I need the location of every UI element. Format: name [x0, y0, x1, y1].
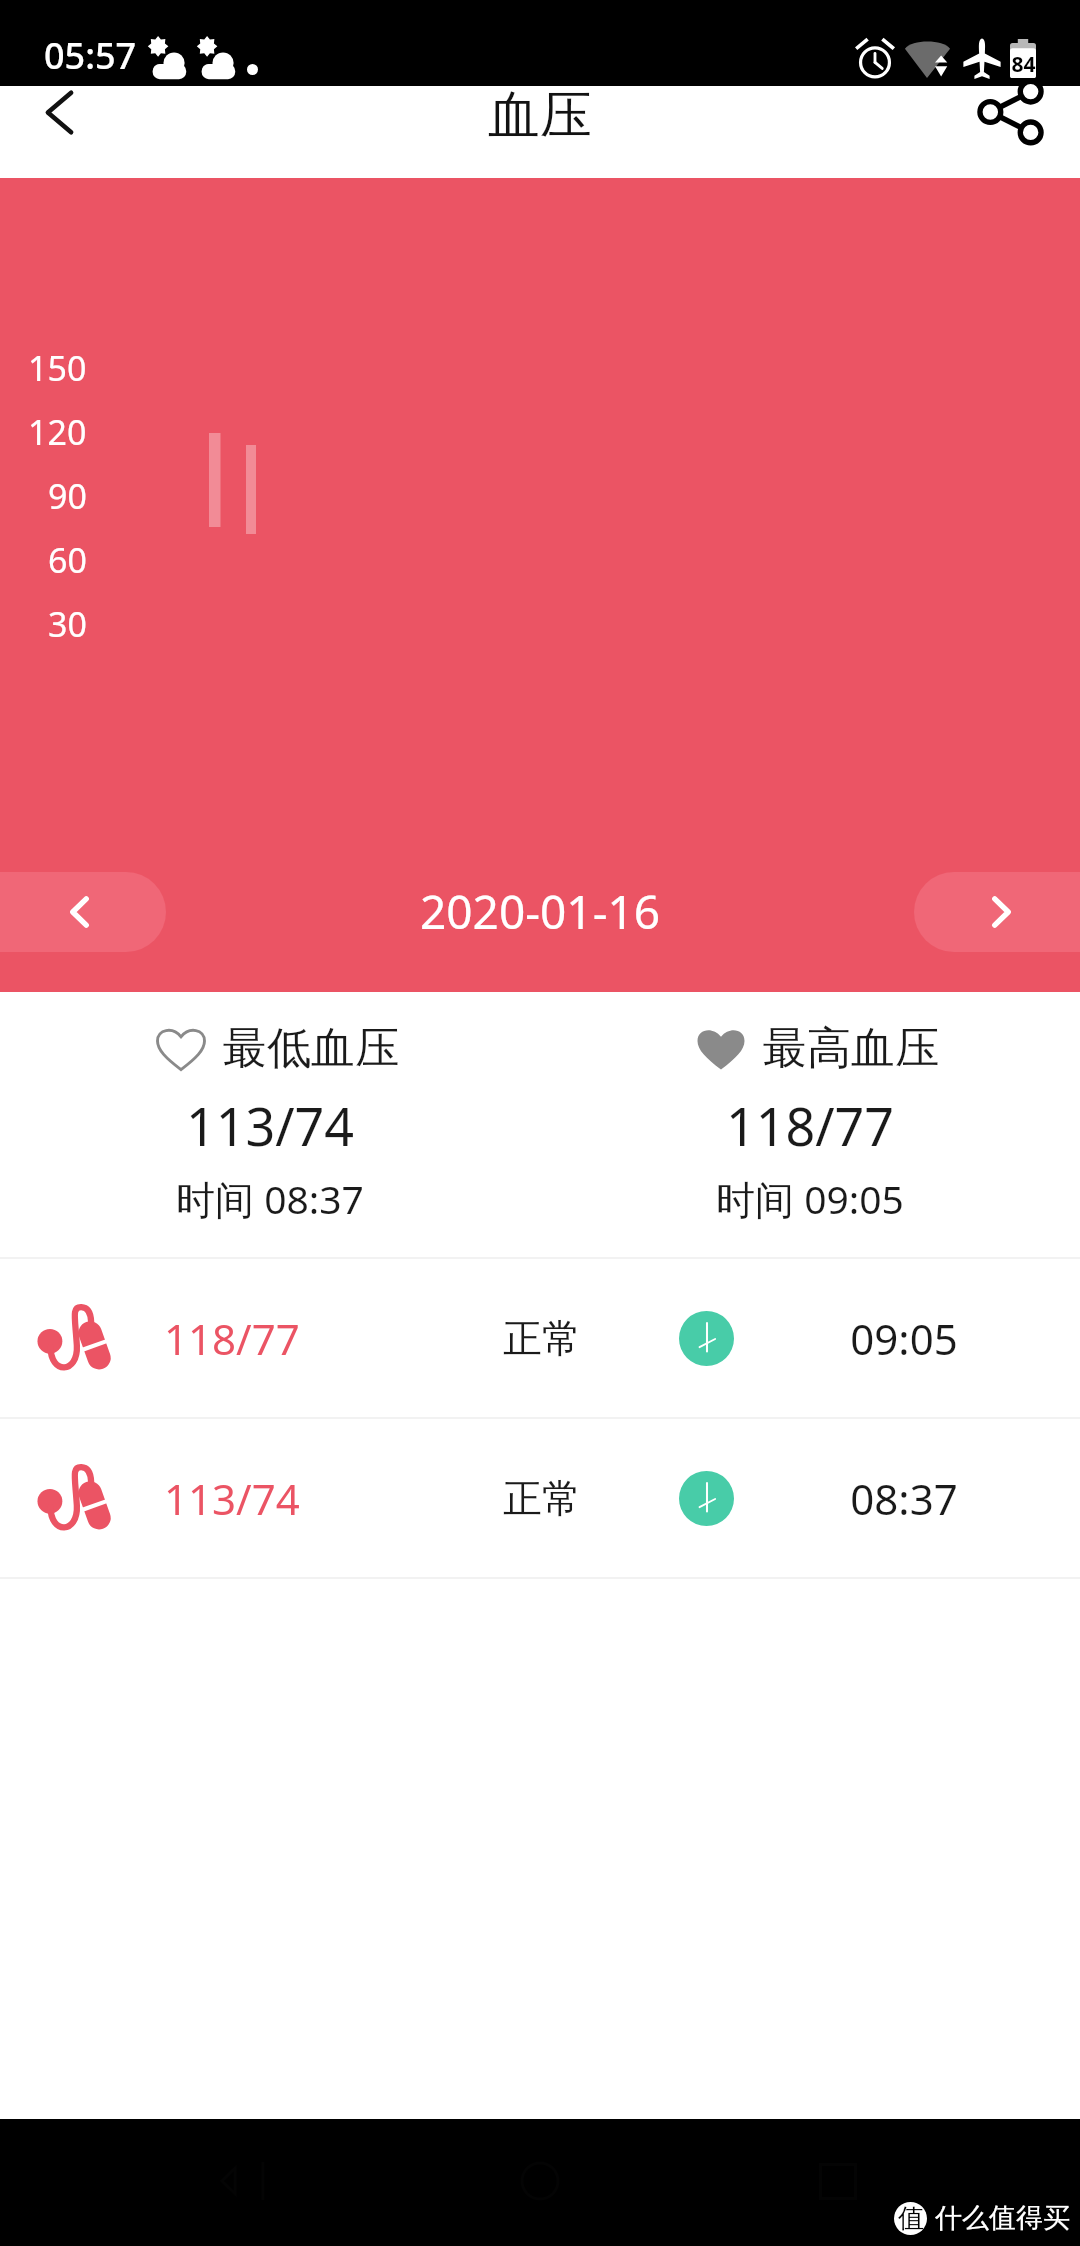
staticText: 113/74 — [186, 1090, 355, 1161]
staticText: 时间 09:05 — [716, 1172, 904, 1225]
staticText: 值 — [898, 2202, 924, 2235]
staticText: 正常 — [503, 1474, 581, 1523]
staticText: 最高血压 — [763, 1021, 939, 1076]
staticText: 血压 — [488, 83, 592, 149]
staticText: 84 — [1011, 50, 1036, 79]
button[interactable]: Back — [0, 86, 120, 178]
staticText: 09:05 — [850, 1310, 958, 1367]
staticText: 90 — [48, 473, 87, 513]
staticText: 118/77 — [164, 1310, 300, 1367]
staticText: 05:57 — [44, 31, 137, 80]
staticText: 什么值得买 — [935, 2201, 1070, 2235]
staticText: 时间 08:37 — [176, 1172, 364, 1225]
staticText: 120 — [28, 409, 87, 449]
staticText: 30 — [48, 601, 87, 641]
staticText: 118/77 — [726, 1090, 895, 1161]
button[interactable]: Share — [960, 86, 1080, 178]
staticText: 60 — [48, 537, 87, 577]
button[interactable]: 最高血压 — [540, 992, 1080, 1257]
staticText: 150 — [28, 345, 87, 385]
button[interactable]: Next day — [914, 872, 1080, 952]
button[interactable]: Previous day — [0, 872, 166, 952]
staticText: 最低血压 — [223, 1021, 399, 1076]
button[interactable]: 113/74 — [0, 1419, 1080, 1577]
staticText: 2020-01-16 — [420, 880, 661, 943]
button[interactable]: 最低血压 — [0, 992, 540, 1257]
staticText: 正常 — [503, 1314, 581, 1363]
staticText: 113/74 — [164, 1470, 300, 1527]
button[interactable]: 118/77 — [0, 1259, 1080, 1417]
staticText: 08:37 — [850, 1470, 958, 1527]
